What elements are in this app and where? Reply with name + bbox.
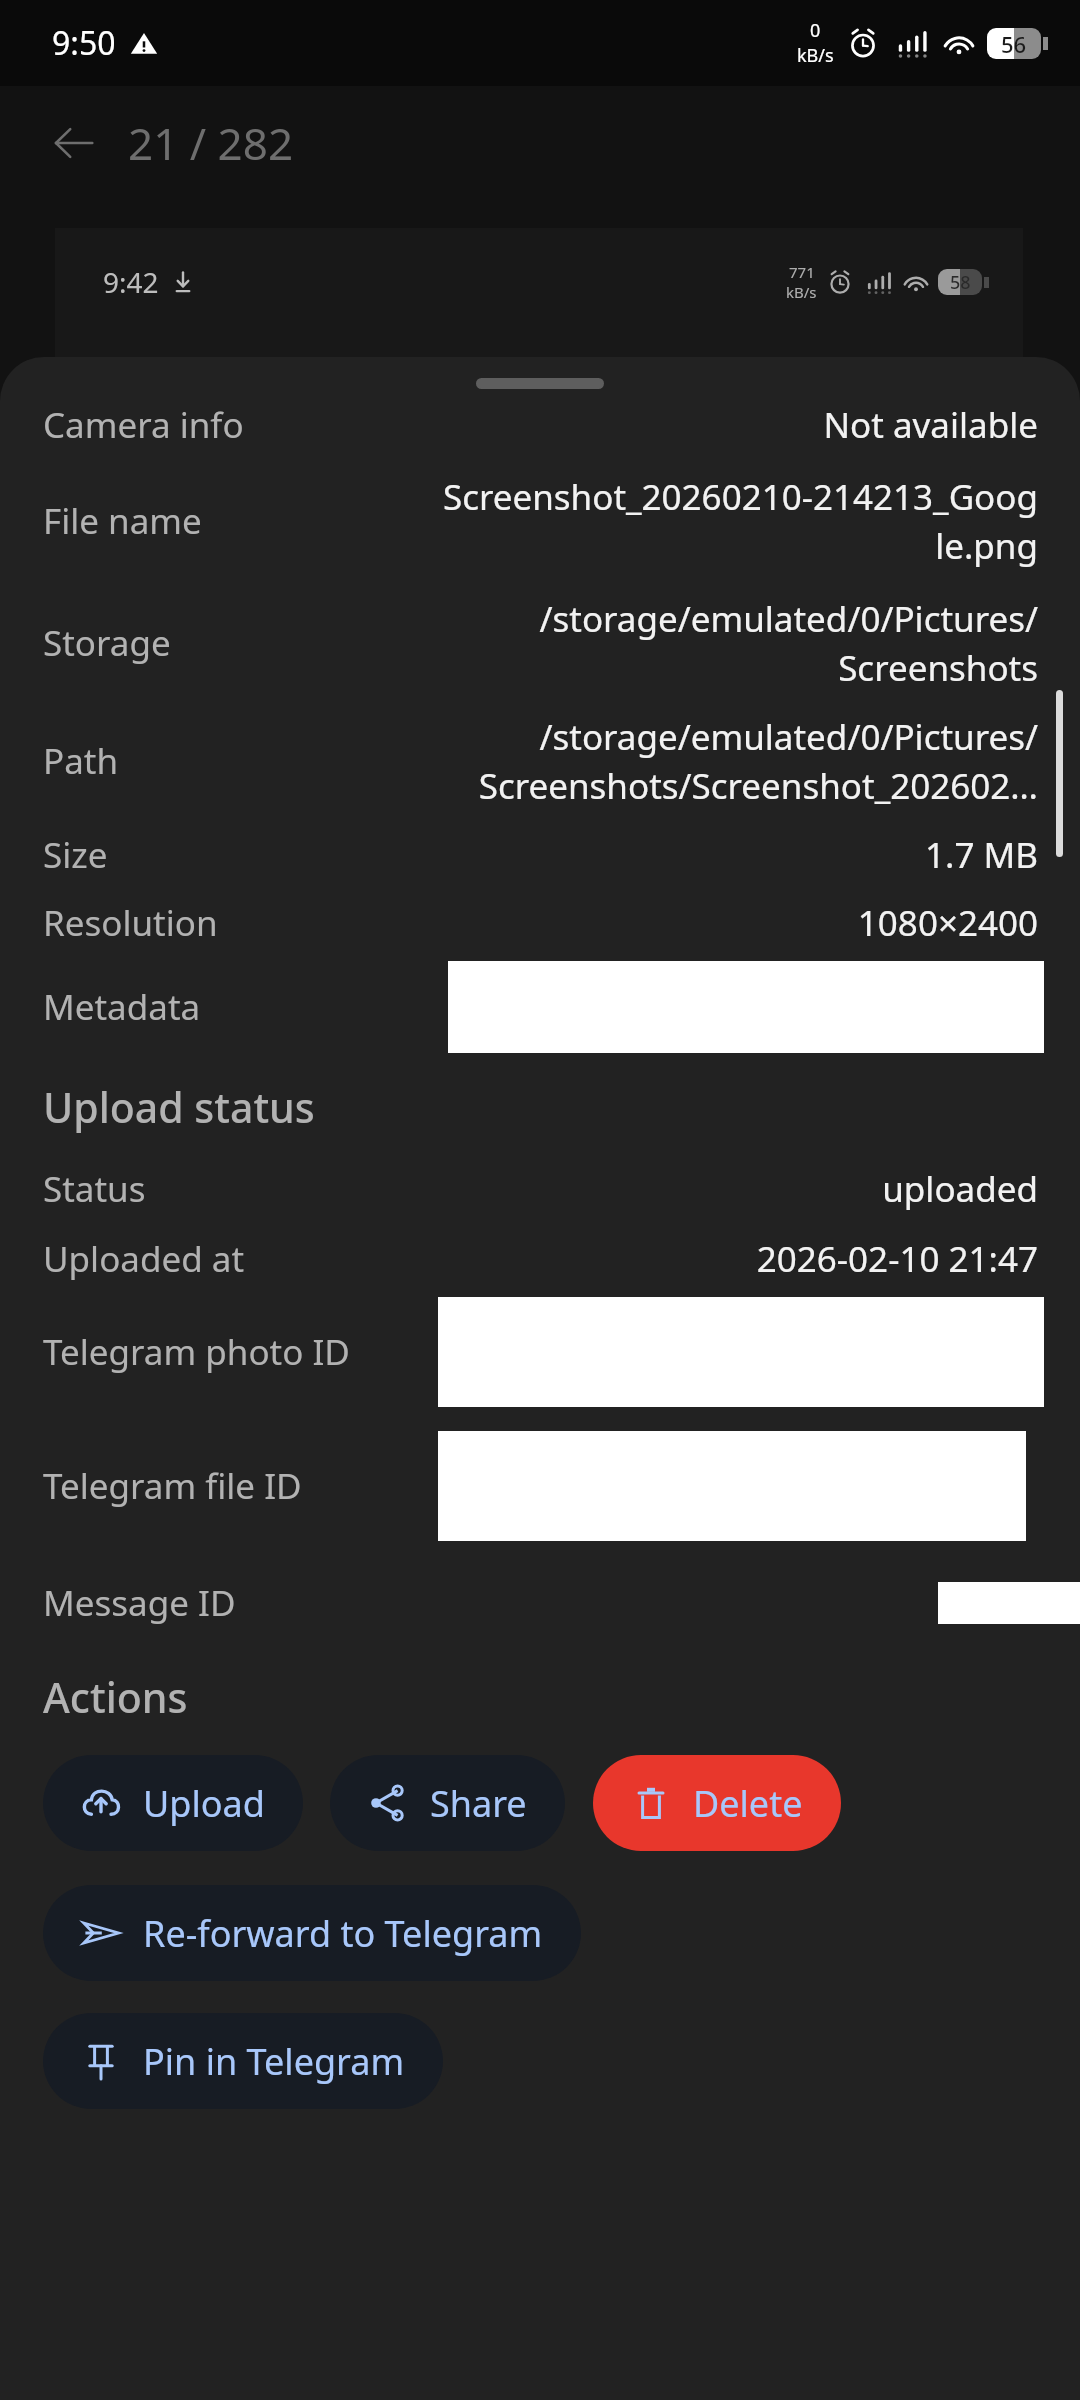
staticText: Message ID: [43, 1579, 236, 1627]
staticText: File name: [43, 497, 441, 545]
button[interactable]: Uploaded at: [43, 1235, 1038, 1283]
staticText: Re-forward to Telegram: [143, 1909, 543, 1958]
button[interactable]: Size: [43, 831, 1038, 879]
staticText: /storage/emulated/0/Pictures/Screenshots: [441, 595, 1038, 691]
button[interactable]: Share: [330, 1755, 565, 1851]
staticText: 21 / 282: [128, 113, 294, 173]
staticText: Actions: [43, 1669, 188, 1725]
staticText: uploaded: [441, 1165, 1038, 1213]
staticText: 9:50: [52, 21, 116, 65]
staticText: Resolution: [43, 899, 441, 947]
button[interactable]: Storage: [43, 595, 1038, 691]
staticText: 56: [1001, 29, 1027, 59]
button[interactable]: Status: [43, 1165, 1038, 1213]
staticText: Metadata: [43, 983, 201, 1031]
staticText: Delete: [693, 1779, 803, 1828]
staticText: 0: [810, 18, 821, 43]
staticText: Telegram file ID: [43, 1462, 302, 1510]
staticText: kB/s: [797, 43, 834, 68]
staticText: Share: [430, 1779, 527, 1828]
staticText: 771: [789, 262, 815, 282]
staticText: Storage: [43, 619, 441, 667]
staticText: 9:42: [103, 263, 159, 301]
button[interactable]: Re-forward to Telegram: [43, 1885, 581, 1981]
staticText: /storage/emulated/0/Pictures/Screenshots…: [441, 713, 1038, 809]
button[interactable]: Message ID: [0, 1567, 1080, 1639]
button[interactable]: Telegram photo ID: [0, 1297, 1080, 1407]
staticText: 1.7 MB: [441, 831, 1038, 879]
button[interactable]: Back: [28, 98, 118, 188]
button[interactable]: Delete: [593, 1755, 841, 1851]
staticText: Status: [43, 1165, 441, 1213]
staticText: Telegram photo ID: [43, 1328, 350, 1376]
staticText: Upload status: [43, 1079, 315, 1135]
staticText: Path: [43, 737, 441, 785]
button[interactable]: Camera info: [43, 401, 1038, 449]
staticText: 58: [950, 270, 971, 295]
staticText: Pin in Telegram: [143, 2037, 405, 2086]
staticText: Not available: [441, 401, 1038, 449]
staticText: 1080×2400: [441, 899, 1038, 947]
button[interactable]: Telegram file ID: [0, 1431, 1080, 1541]
button[interactable]: File name: [43, 473, 1038, 569]
button[interactable]: Pin in Telegram: [43, 2013, 443, 2109]
staticText: Size: [43, 831, 441, 879]
button[interactable]: Path: [43, 713, 1038, 809]
staticText: kB/s: [786, 282, 817, 302]
staticText: Camera info: [43, 401, 441, 449]
button[interactable]: Upload: [43, 1755, 303, 1851]
button[interactable]: Resolution: [43, 899, 1038, 947]
staticText: Screenshot_20260210-214213_Google.png: [441, 473, 1038, 569]
staticText: Upload: [143, 1779, 265, 1828]
staticText: Uploaded at: [43, 1235, 441, 1283]
button[interactable]: Metadata: [0, 961, 1080, 1053]
staticText: 2026-02-10 21:47: [441, 1235, 1038, 1283]
